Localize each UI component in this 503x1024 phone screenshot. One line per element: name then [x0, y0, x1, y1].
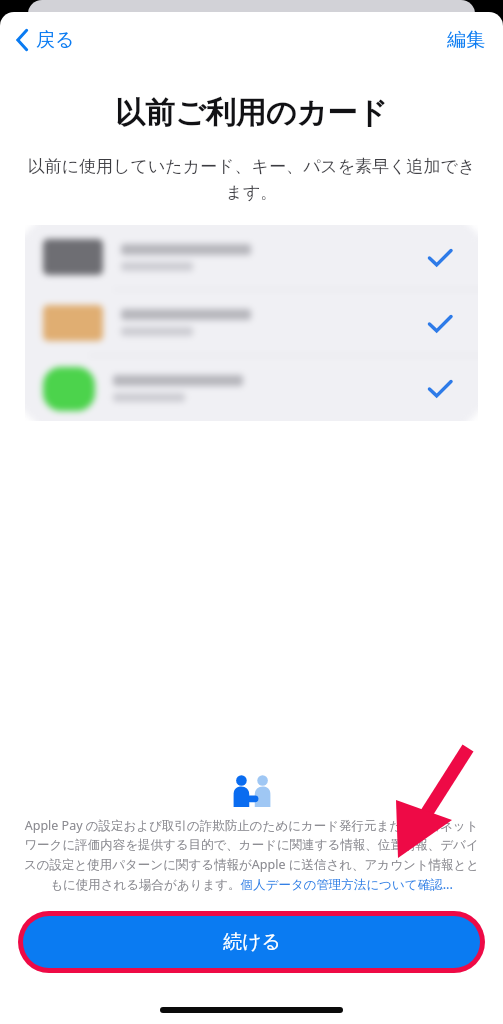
button[interactable]: Selected card	[25, 225, 478, 291]
staticText: Apple Pay の設定および取引の詐欺防止のためにカード発行元または決済ネッ…	[20, 817, 483, 893]
button[interactable]: Selected card	[25, 291, 478, 356]
staticText: 以前ご利用のカード	[115, 94, 388, 132]
button[interactable]: 戻る	[8, 22, 83, 58]
staticText: 編集	[447, 28, 485, 52]
button[interactable]: Selected card	[25, 356, 478, 421]
button[interactable]: 続ける	[23, 916, 480, 968]
staticText: 続ける	[223, 930, 281, 954]
button[interactable]: 編集	[437, 22, 495, 58]
staticText: 以前に使用していたカード、キー、パスを素早く追加できます。	[26, 156, 477, 203]
staticText: 戻る	[36, 28, 75, 52]
